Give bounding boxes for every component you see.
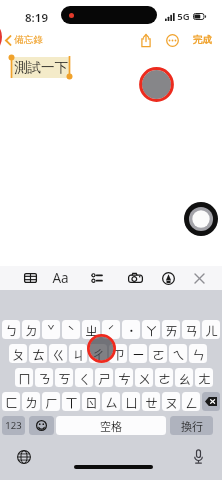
button[interactable]: ㄕ (95, 368, 113, 387)
staticText: ㄖ (85, 393, 98, 411)
button[interactable]: ㄡ (162, 392, 180, 411)
staticText: ㄝ (145, 393, 158, 411)
button[interactable]: 備忘錄 (5, 34, 43, 46)
button[interactable]: Backspace (202, 392, 220, 411)
staticText: ㄤ (198, 369, 211, 387)
button[interactable]: ㄜ (155, 368, 173, 387)
staticText: ㄦ (205, 321, 218, 339)
button[interactable]: ㄤ (195, 368, 213, 387)
button[interactable]: ㄌ (22, 392, 40, 411)
staticText: ㄟ (172, 345, 185, 363)
button[interactable]: ㄑ (75, 368, 93, 387)
button[interactable]: ㄆ (9, 344, 27, 363)
button[interactable]: ㄓ (82, 320, 100, 339)
staticText: ㄚ (145, 321, 158, 339)
button[interactable]: ㄚ (142, 320, 160, 339)
button[interactable]: ㄗ (109, 344, 127, 363)
staticText: 完成 (193, 34, 212, 46)
button[interactable]: ㄦ (202, 320, 220, 339)
button[interactable]: ㄍ (49, 344, 67, 363)
staticText: ㄜ (158, 369, 171, 387)
staticText: ㄛ (152, 345, 165, 363)
button[interactable]: ㄩ (122, 392, 140, 411)
button[interactable]: Markup (157, 267, 179, 289)
staticText: ㄥ (185, 393, 198, 411)
staticText: ㄒ (65, 393, 78, 411)
button[interactable]: More options (165, 33, 179, 47)
button[interactable]: ˋ (62, 320, 80, 339)
button[interactable]: ㄟ (169, 344, 187, 363)
button[interactable]: ˊ (102, 320, 120, 339)
button[interactable]: Close keyboard (188, 267, 210, 289)
staticText: 8:19 (25, 10, 48, 26)
staticText: ㄓ (85, 321, 98, 339)
staticText: ㄞ (165, 321, 178, 339)
staticText: ㄋ (38, 369, 51, 387)
staticText: ㄊ (32, 345, 45, 363)
button[interactable]: 空格 (56, 416, 166, 435)
staticText: ˙ (128, 321, 135, 339)
button[interactable]: 完成 (193, 34, 212, 46)
button[interactable]: Table (19, 267, 41, 289)
button[interactable]: ㄋ (35, 368, 53, 387)
button[interactable]: ㄒ (62, 392, 80, 411)
staticText: 換行 (181, 418, 203, 434)
button[interactable]: ㄢ (182, 320, 200, 339)
button[interactable]: ㄙ (102, 392, 120, 411)
staticText: ㄎ (58, 369, 71, 387)
button[interactable]: Text format (49, 267, 71, 289)
staticText: ㄙ (105, 393, 118, 411)
staticText: 備忘錄 (14, 34, 43, 46)
button[interactable]: Share (140, 33, 151, 47)
staticText: ˇ (47, 321, 55, 339)
staticText: ㄇ (18, 369, 31, 387)
button[interactable]: ㄔ (89, 344, 107, 363)
button[interactable]: ㄎ (55, 368, 73, 387)
staticText: ㄏ (45, 393, 58, 411)
staticText: ㄕ (98, 369, 111, 387)
staticText: ㄉ (25, 321, 38, 339)
button[interactable]: Dictation (192, 449, 204, 465)
button[interactable]: ㄛ (149, 344, 167, 363)
button[interactable]: ㄐ (69, 344, 87, 363)
staticText: ㄅ (5, 321, 18, 339)
button[interactable]: ㄏ (42, 392, 60, 411)
staticText: ㄠ (178, 369, 191, 387)
button[interactable]: ㄠ (175, 368, 193, 387)
button[interactable]: ㄇ (15, 368, 33, 387)
staticText: ㄆ (12, 345, 25, 363)
button[interactable]: ㄝ (142, 392, 160, 411)
staticText: ㄧ (132, 345, 145, 363)
staticText: ㄐ (72, 345, 85, 363)
button[interactable]: 換行 (170, 416, 213, 435)
staticText: ㄘ (118, 369, 131, 387)
staticText: 123 (5, 419, 22, 432)
button[interactable]: ˙ (122, 320, 140, 339)
staticText: ˋ (67, 321, 75, 339)
button[interactable]: ㄥ (182, 392, 200, 411)
button[interactable]: ㄧ (129, 344, 147, 363)
button[interactable]: ㄉ (22, 320, 40, 339)
staticText: ㄢ (185, 321, 198, 339)
button[interactable]: ㄘ (115, 368, 133, 387)
staticText: ㄩ (125, 393, 138, 411)
staticText: 空格 (100, 418, 122, 434)
button[interactable]: ˇ (42, 320, 60, 339)
staticText: ㄣ (192, 345, 205, 363)
staticText: 測試一下 (14, 59, 68, 76)
button[interactable]: ㄨ (135, 368, 153, 387)
staticText: Aa (52, 269, 69, 287)
button[interactable]: ㄞ (162, 320, 180, 339)
button[interactable]: ㄖ (82, 392, 100, 411)
button[interactable]: ㄈ (2, 392, 20, 411)
button[interactable]: Emoji (29, 416, 54, 435)
staticText: 5G (177, 10, 190, 23)
button[interactable]: ㄅ (2, 320, 20, 339)
button[interactable]: ㄣ (189, 344, 207, 363)
button[interactable]: ㄊ (29, 344, 47, 363)
staticText: ㄔ (92, 345, 105, 363)
button[interactable]: Checklist (85, 267, 107, 289)
button[interactable]: Camera (124, 267, 146, 289)
button[interactable]: Change keyboard (17, 450, 31, 464)
button[interactable]: 123 (2, 416, 25, 435)
